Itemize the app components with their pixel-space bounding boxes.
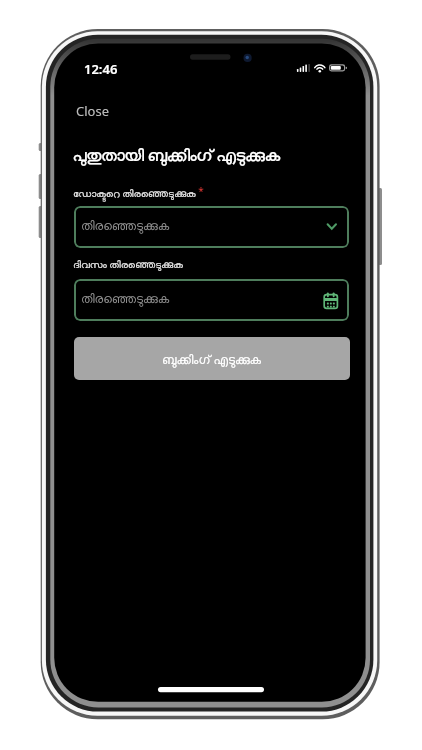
staticText: ബുക്കിംഗ് എടുക്കുക (162, 351, 262, 367)
button[interactable]: Close (70, 98, 103, 116)
staticText: തിരഞ്ഞെടുക്കുക (81, 220, 170, 232)
staticText: 12:46 (84, 60, 118, 78)
button[interactable]: ബുക്കിംഗ് എടുക്കുക (74, 337, 350, 380)
staticText: Close (76, 102, 109, 120)
staticText: പുതുതായി ബുക്കിംഗ് എടുക്കുക (73, 144, 281, 166)
button[interactable]: തിരഞ്ഞെടുക്കുക (74, 206, 349, 248)
staticText: തിരഞ്ഞെടുക്കുക (81, 293, 170, 305)
staticText: ഡോക്ടറെ തിരഞ്ഞെടുക്കുക * (73, 184, 204, 200)
button[interactable]: തിരഞ്ഞെടുക്കുക (74, 279, 349, 321)
staticText: ദിവസം തിരഞ്ഞെടുക്കുക (73, 257, 183, 271)
